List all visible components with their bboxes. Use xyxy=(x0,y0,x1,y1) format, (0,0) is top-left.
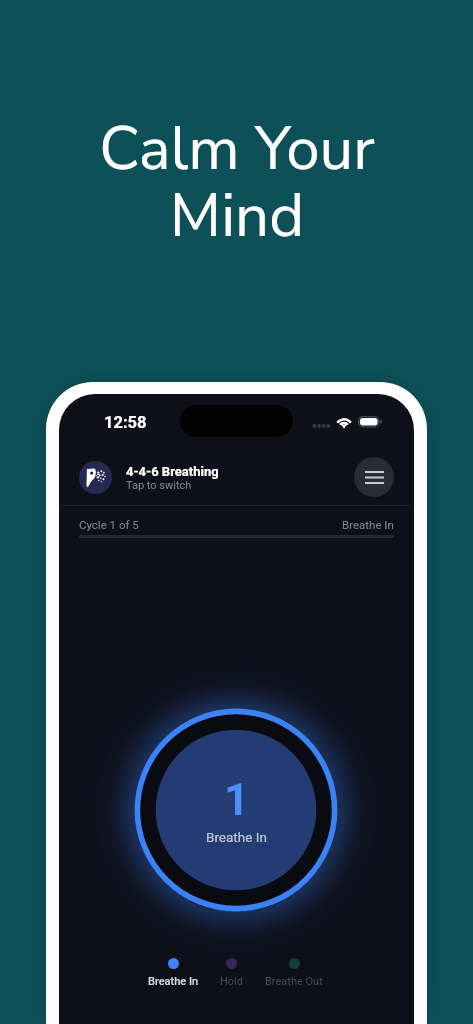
staticText: 4-4-6 Breathing xyxy=(126,464,219,479)
staticText: 1 xyxy=(224,774,250,826)
button[interactable]: Hold xyxy=(191,958,271,988)
button[interactable]: Breathe In xyxy=(133,958,213,988)
staticText: Breathe In xyxy=(206,829,267,845)
button[interactable]: 4-4-6 Breathing xyxy=(79,461,354,494)
button[interactable]: Open menu xyxy=(354,457,394,497)
staticText: Breathe In xyxy=(148,975,199,988)
staticText: Hold xyxy=(220,975,243,988)
staticText: Tap to switch xyxy=(126,479,192,492)
staticText: Breathe Out xyxy=(265,975,323,988)
staticText: Cycle 1 of 5 xyxy=(79,518,139,531)
staticText: 12:58 xyxy=(104,413,147,432)
staticText: Breathe In xyxy=(342,518,394,531)
button[interactable]: Breathe Out xyxy=(254,958,334,988)
staticText: Calm Your Mind xyxy=(99,108,375,257)
